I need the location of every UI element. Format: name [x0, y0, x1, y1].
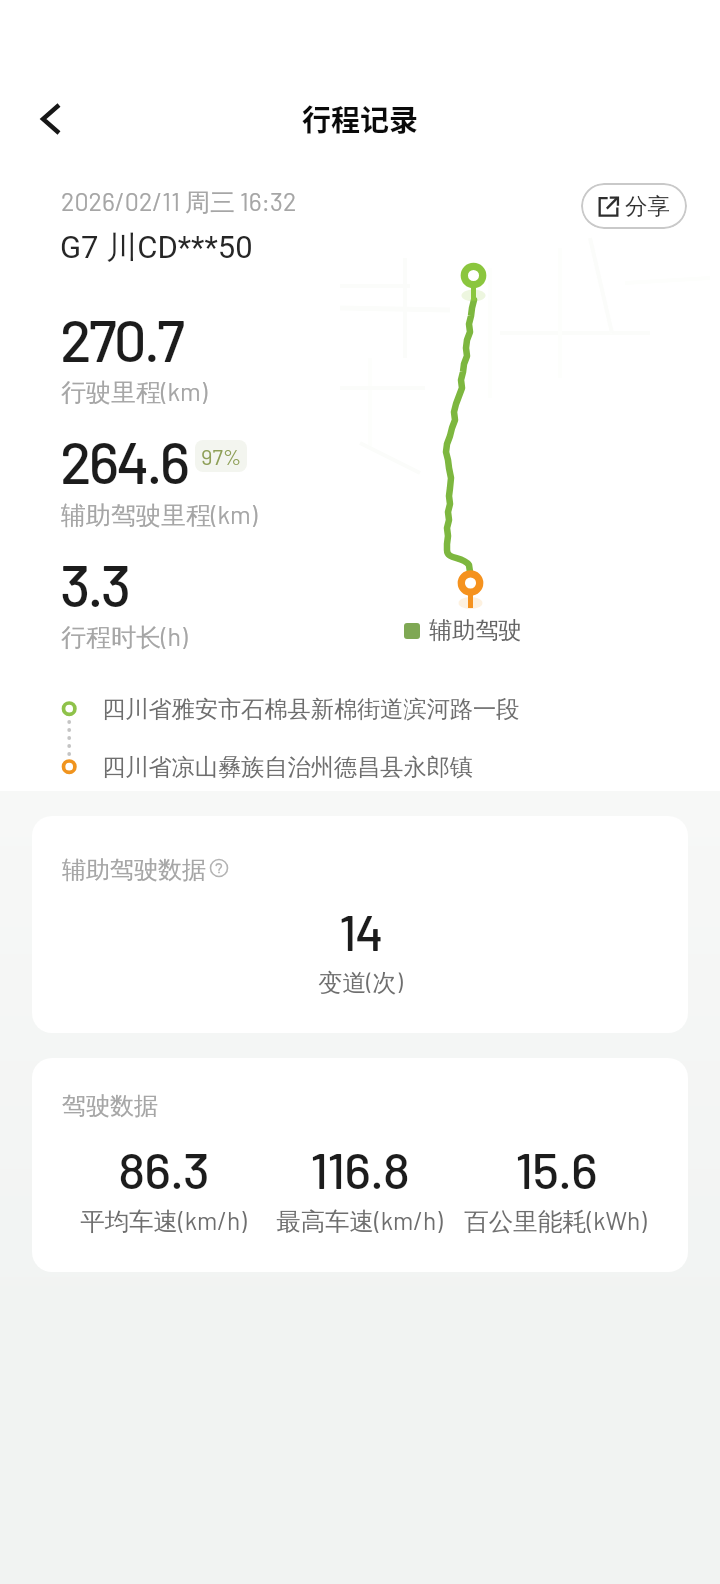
- staticText: 264.6: [60, 426, 188, 496]
- staticText: 14: [339, 901, 382, 961]
- staticText: 百公里能耗(kWh): [464, 1205, 647, 1237]
- staticText: G7 川CD***50: [60, 228, 253, 267]
- staticText: 2026/02/11 周三 16:32: [61, 186, 297, 218]
- staticText: 变道(次): [318, 967, 403, 998]
- staticText: 行驶里程(km): [61, 376, 208, 408]
- staticText: 270.7: [60, 304, 183, 374]
- staticText: 平均车速(km/h): [80, 1205, 247, 1237]
- staticText: 四川省凉山彝族自治州德昌县永郎镇: [102, 753, 473, 782]
- staticText: 行程记录: [302, 97, 419, 139]
- staticText: 辅助驾驶数据: [62, 855, 206, 885]
- staticText: 分享: [625, 192, 670, 220]
- button[interactable]: Back: [14, 91, 70, 147]
- staticText: 86.3: [118, 1138, 209, 1199]
- staticText: 辅助驾驶里程(km): [61, 499, 258, 531]
- staticText: 行程时长(h): [61, 621, 188, 653]
- staticText: 辅助驾驶: [429, 616, 522, 645]
- staticText: 15.6: [515, 1138, 597, 1199]
- staticText: 驾驶数据: [62, 1091, 158, 1121]
- staticText: 116.8: [310, 1138, 409, 1199]
- staticText: 最高车速(km/h): [276, 1205, 443, 1237]
- staticText: 3.3: [60, 549, 129, 619]
- button[interactable]: 分享: [581, 183, 687, 229]
- staticText: 四川省雅安市石棉县新棉街道滨河路一段: [102, 695, 520, 724]
- staticText: 97%: [201, 443, 242, 469]
